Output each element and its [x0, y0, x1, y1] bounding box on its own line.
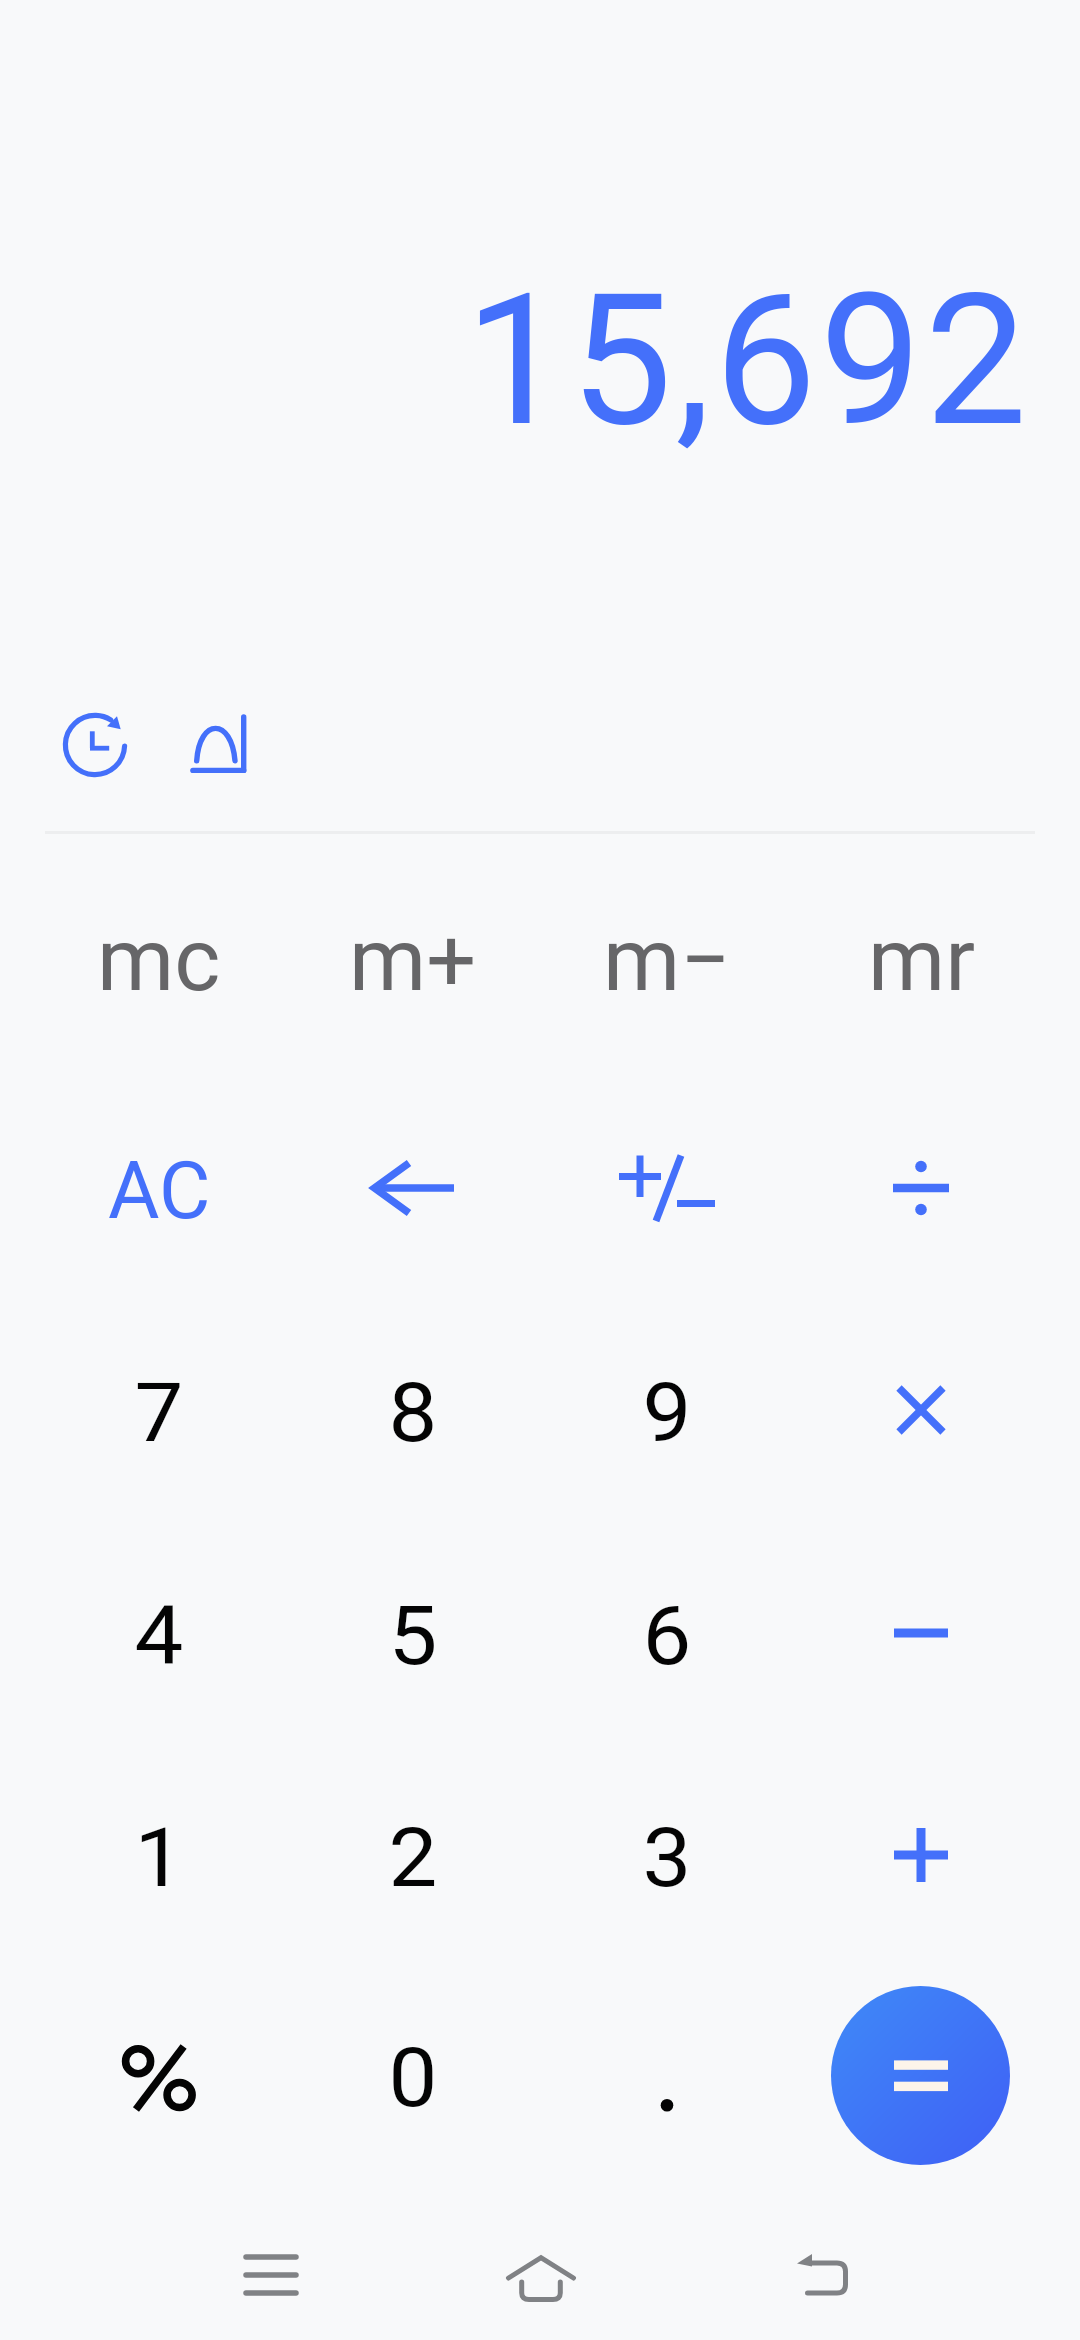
button[interactable]: 0: [286, 1967, 540, 2189]
button[interactable]: Divide: [794, 1077, 1048, 1299]
staticText: 1: [135, 1810, 184, 1906]
button[interactable]: Plus: [794, 1744, 1048, 1966]
staticText: mr: [868, 908, 975, 1011]
staticText: 9: [643, 1365, 692, 1461]
staticText: m+: [349, 908, 477, 1011]
staticText: 8: [389, 1365, 438, 1461]
button[interactable]: m+: [286, 848, 540, 1070]
button[interactable]: History: [49, 699, 141, 791]
staticText: 5: [389, 1588, 438, 1684]
staticText: 6: [643, 1588, 692, 1684]
button[interactable]: 9: [540, 1302, 794, 1524]
staticText: AC: [108, 1145, 211, 1238]
button[interactable]: AC: [32, 1080, 286, 1302]
button[interactable]: mr: [794, 848, 1048, 1070]
button[interactable]: Decimal point: [540, 1967, 794, 2189]
staticText: mc: [97, 908, 221, 1011]
button[interactable]: 1: [32, 1747, 286, 1969]
button[interactable]: 6: [540, 1525, 794, 1747]
button[interactable]: Back: [778, 2230, 868, 2320]
staticText: 0: [389, 2030, 438, 2126]
staticText: 7: [135, 1365, 184, 1461]
button[interactable]: Equals: [831, 1986, 1010, 2165]
button[interactable]: mc: [32, 848, 286, 1070]
staticText: 2: [389, 1810, 438, 1906]
button[interactable]: 5: [286, 1525, 540, 1747]
button[interactable]: 7: [32, 1302, 286, 1524]
button[interactable]: Recents: [226, 2230, 316, 2320]
button[interactable]: 2: [286, 1747, 540, 1969]
button[interactable]: Home: [496, 2231, 586, 2321]
button[interactable]: 3: [540, 1747, 794, 1969]
staticText: 15,692: [464, 254, 1030, 467]
button[interactable]: Multiply: [794, 1299, 1048, 1521]
button[interactable]: 4: [32, 1525, 286, 1747]
button[interactable]: 8: [286, 1302, 540, 1524]
staticText: 3: [643, 1810, 692, 1906]
button[interactable]: Backspace: [286, 1077, 540, 1299]
button[interactable]: Plus minus: [540, 1077, 794, 1299]
staticText: 4: [135, 1588, 184, 1684]
button[interactable]: m−: [540, 848, 794, 1070]
button[interactable]: Percent: [32, 1967, 286, 2189]
staticText: m−: [603, 908, 731, 1011]
button[interactable]: Graph: [172, 699, 264, 791]
button[interactable]: Minus: [794, 1522, 1048, 1744]
